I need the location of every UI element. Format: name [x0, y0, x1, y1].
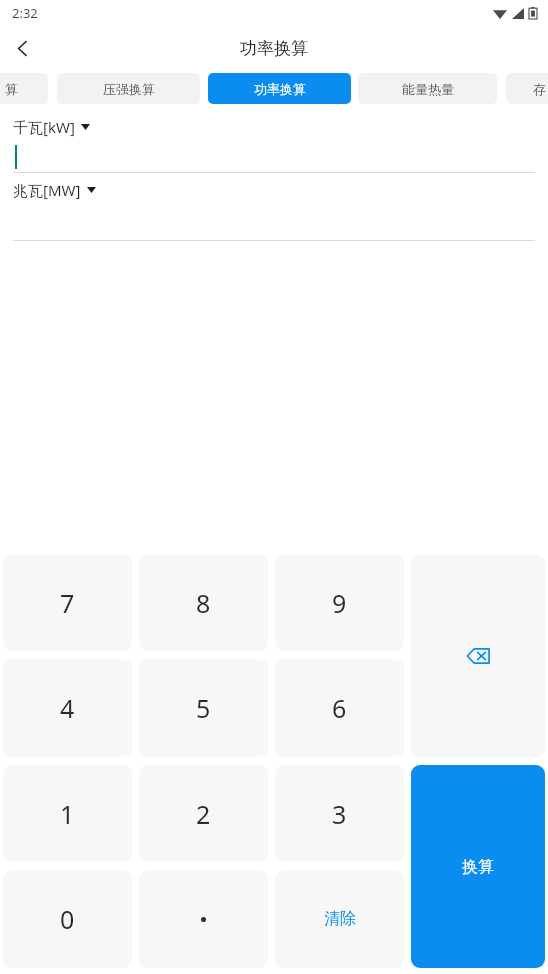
button[interactable]: 2: [139, 765, 268, 862]
staticText: 清除: [324, 909, 356, 929]
staticText: 功率换算: [254, 81, 306, 97]
button[interactable]: 兆瓦[MW]: [13, 180, 96, 200]
staticText: 8: [196, 586, 211, 620]
staticText: 压强换算: [103, 81, 155, 97]
staticText: 能量热量: [402, 81, 454, 97]
staticText: 9: [332, 586, 347, 620]
staticText: 千瓦[kW]: [13, 117, 75, 137]
button[interactable]: 4: [3, 659, 132, 757]
button[interactable]: 9: [275, 554, 404, 651]
button[interactable]: 压强换算: [57, 73, 200, 104]
staticText: 兆瓦[MW]: [13, 180, 81, 200]
button[interactable]: 6: [275, 659, 404, 757]
button[interactable]: 存: [506, 73, 548, 104]
staticText: 4: [60, 691, 75, 725]
button[interactable]: 5: [139, 659, 268, 757]
button[interactable]: [0, 142, 548, 172]
button[interactable]: Backspace: [411, 554, 545, 757]
button[interactable]: 0: [3, 870, 132, 968]
staticText: 1: [60, 797, 75, 831]
button[interactable]: 3: [275, 765, 404, 862]
button[interactable]: 8: [139, 554, 268, 651]
staticText: 0: [60, 902, 75, 936]
button[interactable]: 千瓦[kW]: [13, 117, 90, 137]
staticText: 7: [60, 586, 75, 620]
staticText: 6: [332, 691, 347, 725]
staticText: 换算: [462, 857, 494, 877]
staticText: 2:32: [12, 4, 38, 22]
button[interactable]: 功率换算: [208, 73, 351, 104]
staticText: 5: [196, 691, 211, 725]
button[interactable]: [139, 870, 268, 968]
button[interactable]: 7: [3, 554, 132, 651]
staticText: 3: [332, 797, 347, 831]
button[interactable]: 能量热量: [358, 73, 497, 104]
staticText: 存: [533, 81, 546, 97]
button[interactable]: 1: [3, 765, 132, 862]
staticText: 功率换算: [240, 38, 308, 59]
staticText: 2: [196, 797, 211, 831]
button[interactable]: 清除: [275, 870, 404, 968]
staticText: 算: [5, 81, 18, 97]
button[interactable]: 算: [0, 73, 48, 104]
button[interactable]: 换算: [411, 765, 545, 968]
button[interactable]: Back: [0, 26, 44, 70]
